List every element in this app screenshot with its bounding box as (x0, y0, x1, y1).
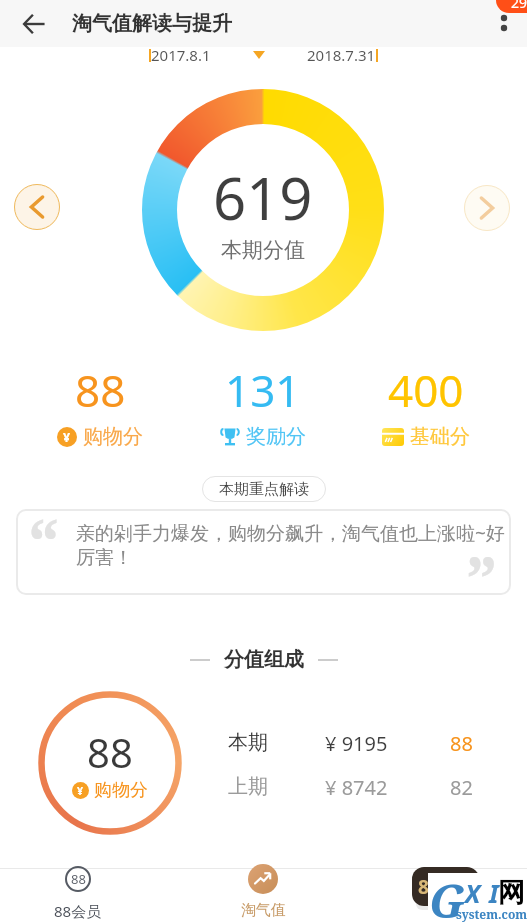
button[interactable]: 淘气值 (213, 864, 313, 922)
staticText: 网 (498, 876, 525, 910)
staticText: 619 (213, 158, 313, 237)
staticText: 88 (450, 730, 473, 757)
staticText: 分值组成 (224, 647, 304, 672)
button[interactable] (14, 4, 54, 44)
staticText: 本期重点解读 (219, 480, 309, 499)
staticText: 88 (87, 725, 133, 779)
staticText: “ (28, 497, 60, 583)
staticText: G (429, 869, 466, 918)
staticText: 基础分 (410, 424, 470, 449)
staticText: 88 (418, 874, 440, 900)
staticText: 本期分值 (221, 237, 305, 263)
staticText: 厉害！ (76, 546, 133, 570)
button[interactable] (464, 185, 510, 231)
staticText: 本期 (228, 730, 268, 755)
staticText: 82 (450, 774, 473, 801)
staticText: 购物分 (94, 779, 148, 802)
staticText: 88 (71, 870, 86, 888)
staticText: 奖励分 (246, 424, 306, 449)
button[interactable]: 131 (203, 360, 323, 449)
button[interactable]: 88 (28, 864, 128, 922)
staticText: 2017.8.1 (151, 45, 211, 65)
button[interactable]: 88 (412, 867, 479, 906)
staticText: 购物分 (83, 424, 143, 449)
staticText: 88会员 (54, 901, 102, 921)
staticText: 亲的剁手力爆发，购物分飙升，淘气值也上涨啦~好 (76, 520, 505, 546)
staticText: X (465, 876, 481, 910)
staticText: 88 (75, 360, 126, 420)
staticText: 淘气值 (241, 901, 286, 920)
staticText: ¥ (63, 429, 71, 446)
staticText: ¥ 9195 (325, 730, 388, 757)
staticText: 400 (388, 360, 464, 420)
button[interactable] (14, 184, 60, 230)
staticText: 淘气值解读与提升 (72, 11, 232, 36)
staticText: ¥ 8742 (325, 774, 388, 801)
button[interactable]: 88 (40, 360, 160, 449)
staticText: I (489, 876, 499, 910)
staticText: ¥ (77, 784, 84, 798)
staticText: ” (466, 535, 498, 621)
staticText: 上期 (228, 774, 268, 799)
staticText: system.com (456, 906, 527, 922)
staticText: 131 (225, 360, 301, 420)
button[interactable]: 400 (366, 360, 486, 449)
staticText: 2018.7.31 (307, 45, 376, 65)
staticText: 29 (511, 0, 527, 12)
